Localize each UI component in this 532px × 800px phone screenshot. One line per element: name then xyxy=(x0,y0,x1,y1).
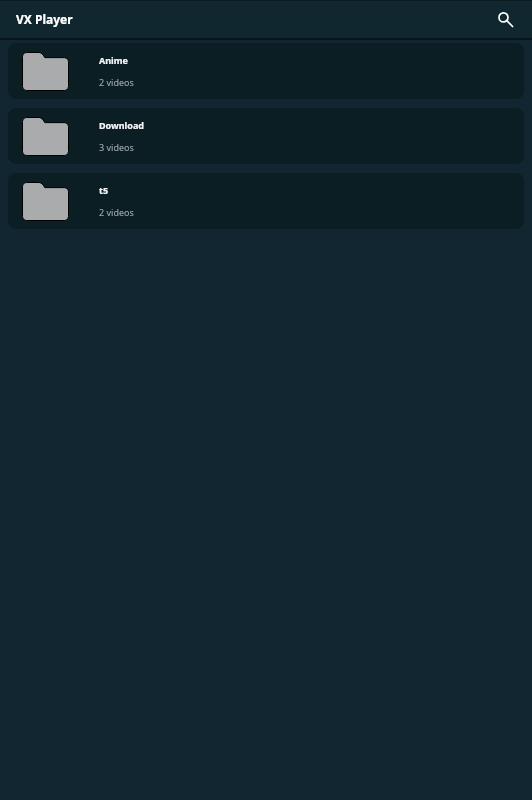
button[interactable]: Download xyxy=(8,108,524,164)
button[interactable]: Anime xyxy=(8,43,524,99)
button[interactable]: t5 xyxy=(8,173,524,229)
staticText: 2 videos xyxy=(99,76,134,88)
staticText: 2 videos xyxy=(99,206,134,218)
staticText: t5 xyxy=(99,184,109,196)
staticText: 3 videos xyxy=(99,141,134,153)
staticText: Anime xyxy=(99,54,128,66)
staticText: VX Player xyxy=(16,11,73,27)
button[interactable]: Search xyxy=(490,3,524,37)
staticText: Download xyxy=(99,119,144,131)
